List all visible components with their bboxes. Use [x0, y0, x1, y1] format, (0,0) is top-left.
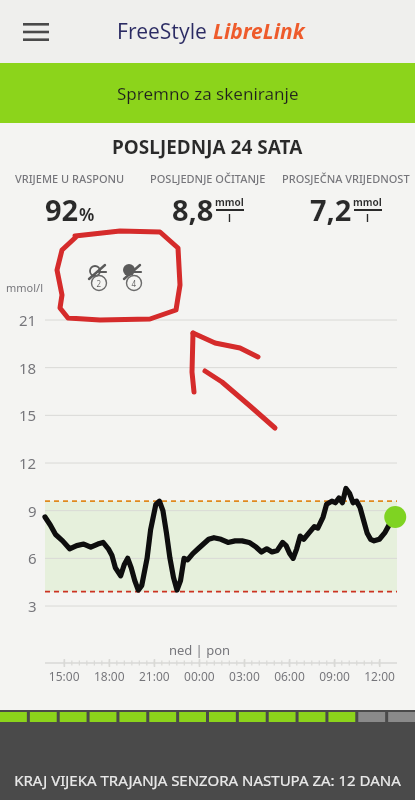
button[interactable]: PROSJEČNA VRIJEDNOST	[277, 171, 415, 229]
button[interactable]: Menu	[14, 10, 58, 54]
staticText: LibreLink	[213, 17, 305, 46]
staticText: %	[79, 203, 95, 226]
staticText: KRAJ VIJEKA TRAJANJA SENZORA NASTUPA ZA:…	[14, 770, 401, 790]
staticText: FreeStyle	[117, 17, 213, 46]
staticText: 8,8	[172, 190, 214, 229]
staticText: POSLJEDNJA 24 SATA	[112, 134, 303, 160]
staticText: 7,2	[310, 190, 352, 229]
staticText: 92	[45, 190, 79, 229]
staticText: mmol	[353, 195, 382, 209]
staticText: l	[366, 211, 369, 225]
staticText: Spremno za skeniranje	[117, 82, 299, 105]
button[interactable]: VRIJEME U RASPONU	[0, 171, 139, 229]
button[interactable]: POSLJEDNJE OČITANJE	[139, 171, 277, 229]
staticText: l	[228, 211, 231, 225]
button[interactable]: Spremno za skeniranje	[0, 63, 415, 123]
button[interactable]: KRAJ VIJEKA TRAJANJA SENZORA NASTUPA ZA:…	[14, 770, 401, 790]
staticText: VRIJEME U RASPONU	[15, 171, 125, 186]
staticText: PROSJEČNA VRIJEDNOST	[282, 171, 410, 186]
staticText: POSLJEDNJE OČITANJE	[150, 171, 266, 186]
staticText: mmol	[215, 195, 244, 209]
